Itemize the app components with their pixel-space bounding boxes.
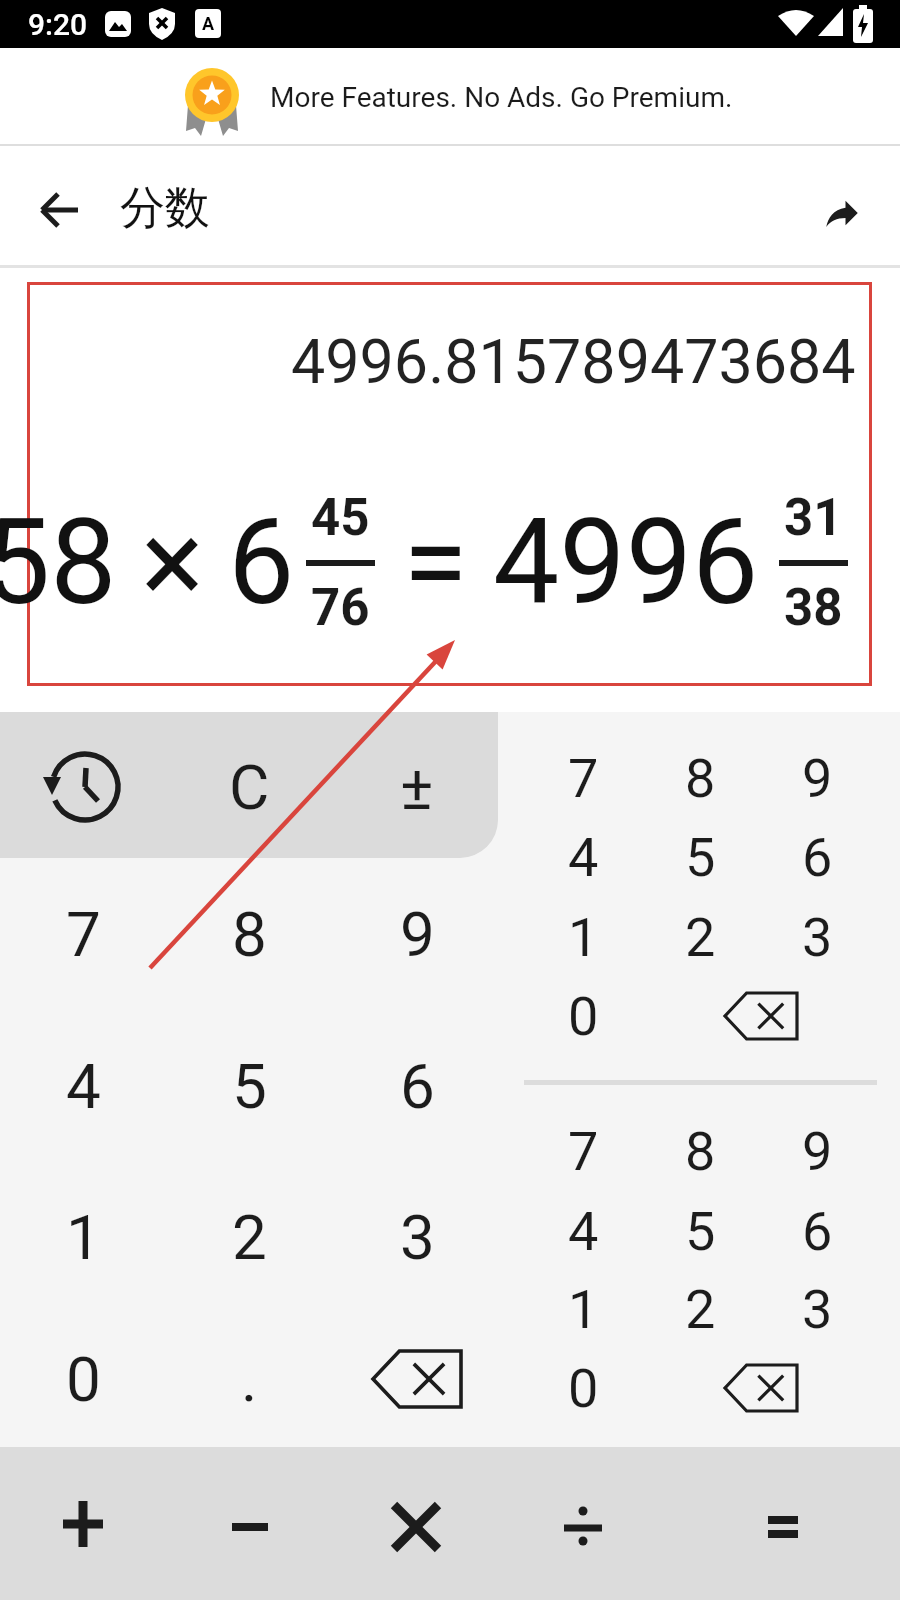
- button[interactable]: [8, 1456, 158, 1596]
- button[interactable]: 7: [528, 739, 638, 817]
- staticText: 76: [311, 578, 370, 638]
- staticText: 3: [400, 1201, 435, 1274]
- staticText: 2: [685, 1278, 716, 1341]
- button[interactable]: [8, 723, 158, 851]
- button[interactable]: More Features. No Ads. Go Premium.: [0, 48, 900, 146]
- staticText: 6: [802, 826, 833, 889]
- button[interactable]: 4: [528, 818, 638, 896]
- staticText: 4996: [493, 494, 759, 632]
- staticText: ±: [400, 751, 434, 824]
- button[interactable]: 2: [174, 1173, 324, 1301]
- staticText: 5: [685, 1200, 716, 1263]
- button[interactable]: 8: [174, 870, 324, 998]
- staticText: 7: [66, 898, 101, 971]
- staticText: 6: [802, 1200, 833, 1263]
- staticText: 7: [568, 1120, 599, 1183]
- button[interactable]: [342, 1324, 492, 1434]
- button[interactable]: [686, 961, 836, 1071]
- button[interactable]: ±: [342, 723, 492, 851]
- button[interactable]: 1: [528, 1270, 638, 1348]
- button[interactable]: 7: [8, 870, 158, 998]
- staticText: More Features. No Ads. Go Premium.: [270, 81, 733, 114]
- button[interactable]: .: [174, 1315, 324, 1443]
- button[interactable]: 8: [645, 1112, 755, 1190]
- button[interactable]: [686, 1333, 836, 1443]
- staticText: 0: [568, 985, 599, 1048]
- staticText: 0: [66, 1343, 101, 1416]
- button[interactable]: 4: [8, 1022, 158, 1150]
- staticText: 9: [802, 1120, 833, 1183]
- button[interactable]: C: [174, 723, 324, 851]
- button[interactable]: 1: [8, 1173, 158, 1301]
- staticText: 2: [685, 906, 716, 969]
- staticText: 45: [311, 488, 370, 548]
- staticText: 1: [568, 1278, 599, 1341]
- staticText: .: [241, 1343, 258, 1416]
- staticText: 58: [0, 494, 117, 632]
- button[interactable]: [341, 1456, 491, 1596]
- button[interactable]: 0: [528, 1349, 638, 1427]
- button[interactable]: 2: [645, 898, 755, 976]
- staticText: 6: [400, 1050, 435, 1123]
- staticText: =: [403, 494, 468, 632]
- staticText: 0: [568, 1357, 599, 1420]
- button[interactable]: 5: [645, 818, 755, 896]
- button[interactable]: 6: [762, 1192, 872, 1270]
- button[interactable]: [708, 1456, 858, 1596]
- button[interactable]: 6: [762, 818, 872, 896]
- button[interactable]: [800, 170, 884, 250]
- button[interactable]: 5: [174, 1022, 324, 1150]
- button[interactable]: 3: [342, 1173, 492, 1301]
- staticText: 4: [568, 826, 599, 889]
- staticText: 4996.815789473684: [291, 326, 856, 392]
- button[interactable]: 7: [528, 1112, 638, 1190]
- staticText: 5: [685, 826, 716, 889]
- staticText: 1: [66, 1201, 101, 1274]
- staticText: ×: [141, 494, 204, 632]
- staticText: 3: [802, 1278, 833, 1341]
- staticText: 9: [400, 898, 435, 971]
- staticText: 3: [802, 906, 833, 969]
- button[interactable]: 4: [528, 1192, 638, 1270]
- staticText: 8: [685, 1120, 716, 1183]
- staticText: 7: [568, 747, 599, 810]
- staticText: 31: [784, 488, 843, 548]
- button[interactable]: 5: [645, 1192, 755, 1270]
- button[interactable]: 9: [342, 870, 492, 998]
- button[interactable]: 3: [762, 898, 872, 976]
- button[interactable]: 9: [762, 1112, 872, 1190]
- button[interactable]: 6: [342, 1022, 492, 1150]
- button[interactable]: [175, 1456, 325, 1596]
- button[interactable]: [20, 170, 100, 250]
- staticText: 4: [568, 1200, 599, 1263]
- staticText: 1: [568, 906, 599, 969]
- button[interactable]: 2: [645, 1270, 755, 1348]
- button[interactable]: 8: [645, 739, 755, 817]
- staticText: 4: [66, 1050, 101, 1123]
- button[interactable]: [508, 1456, 658, 1596]
- button[interactable]: 1: [528, 898, 638, 976]
- staticText: 8: [232, 898, 267, 971]
- button[interactable]: 0: [8, 1315, 158, 1443]
- staticText: 2: [232, 1201, 267, 1274]
- staticText: 6: [228, 494, 295, 632]
- staticText: 9:20: [28, 7, 88, 42]
- staticText: 5: [232, 1050, 267, 1123]
- staticText: A: [202, 13, 215, 34]
- staticText: 38: [784, 578, 843, 638]
- staticText: 9: [802, 747, 833, 810]
- button[interactable]: 9: [762, 739, 872, 817]
- staticText: 8: [685, 747, 716, 810]
- staticText: C: [229, 751, 270, 824]
- staticText: 分数: [120, 180, 210, 237]
- button[interactable]: 3: [762, 1270, 872, 1348]
- button[interactable]: 0: [528, 977, 638, 1055]
